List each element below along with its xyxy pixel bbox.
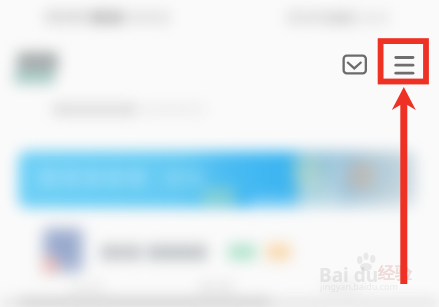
button[interactable]: Mail: [342, 54, 368, 75]
staticText: Bai du: [319, 262, 378, 288]
button[interactable]: Menu: [392, 52, 418, 78]
staticText: jingyan.baidu.com: [320, 280, 398, 292]
staticText: 经验: [378, 263, 412, 284]
